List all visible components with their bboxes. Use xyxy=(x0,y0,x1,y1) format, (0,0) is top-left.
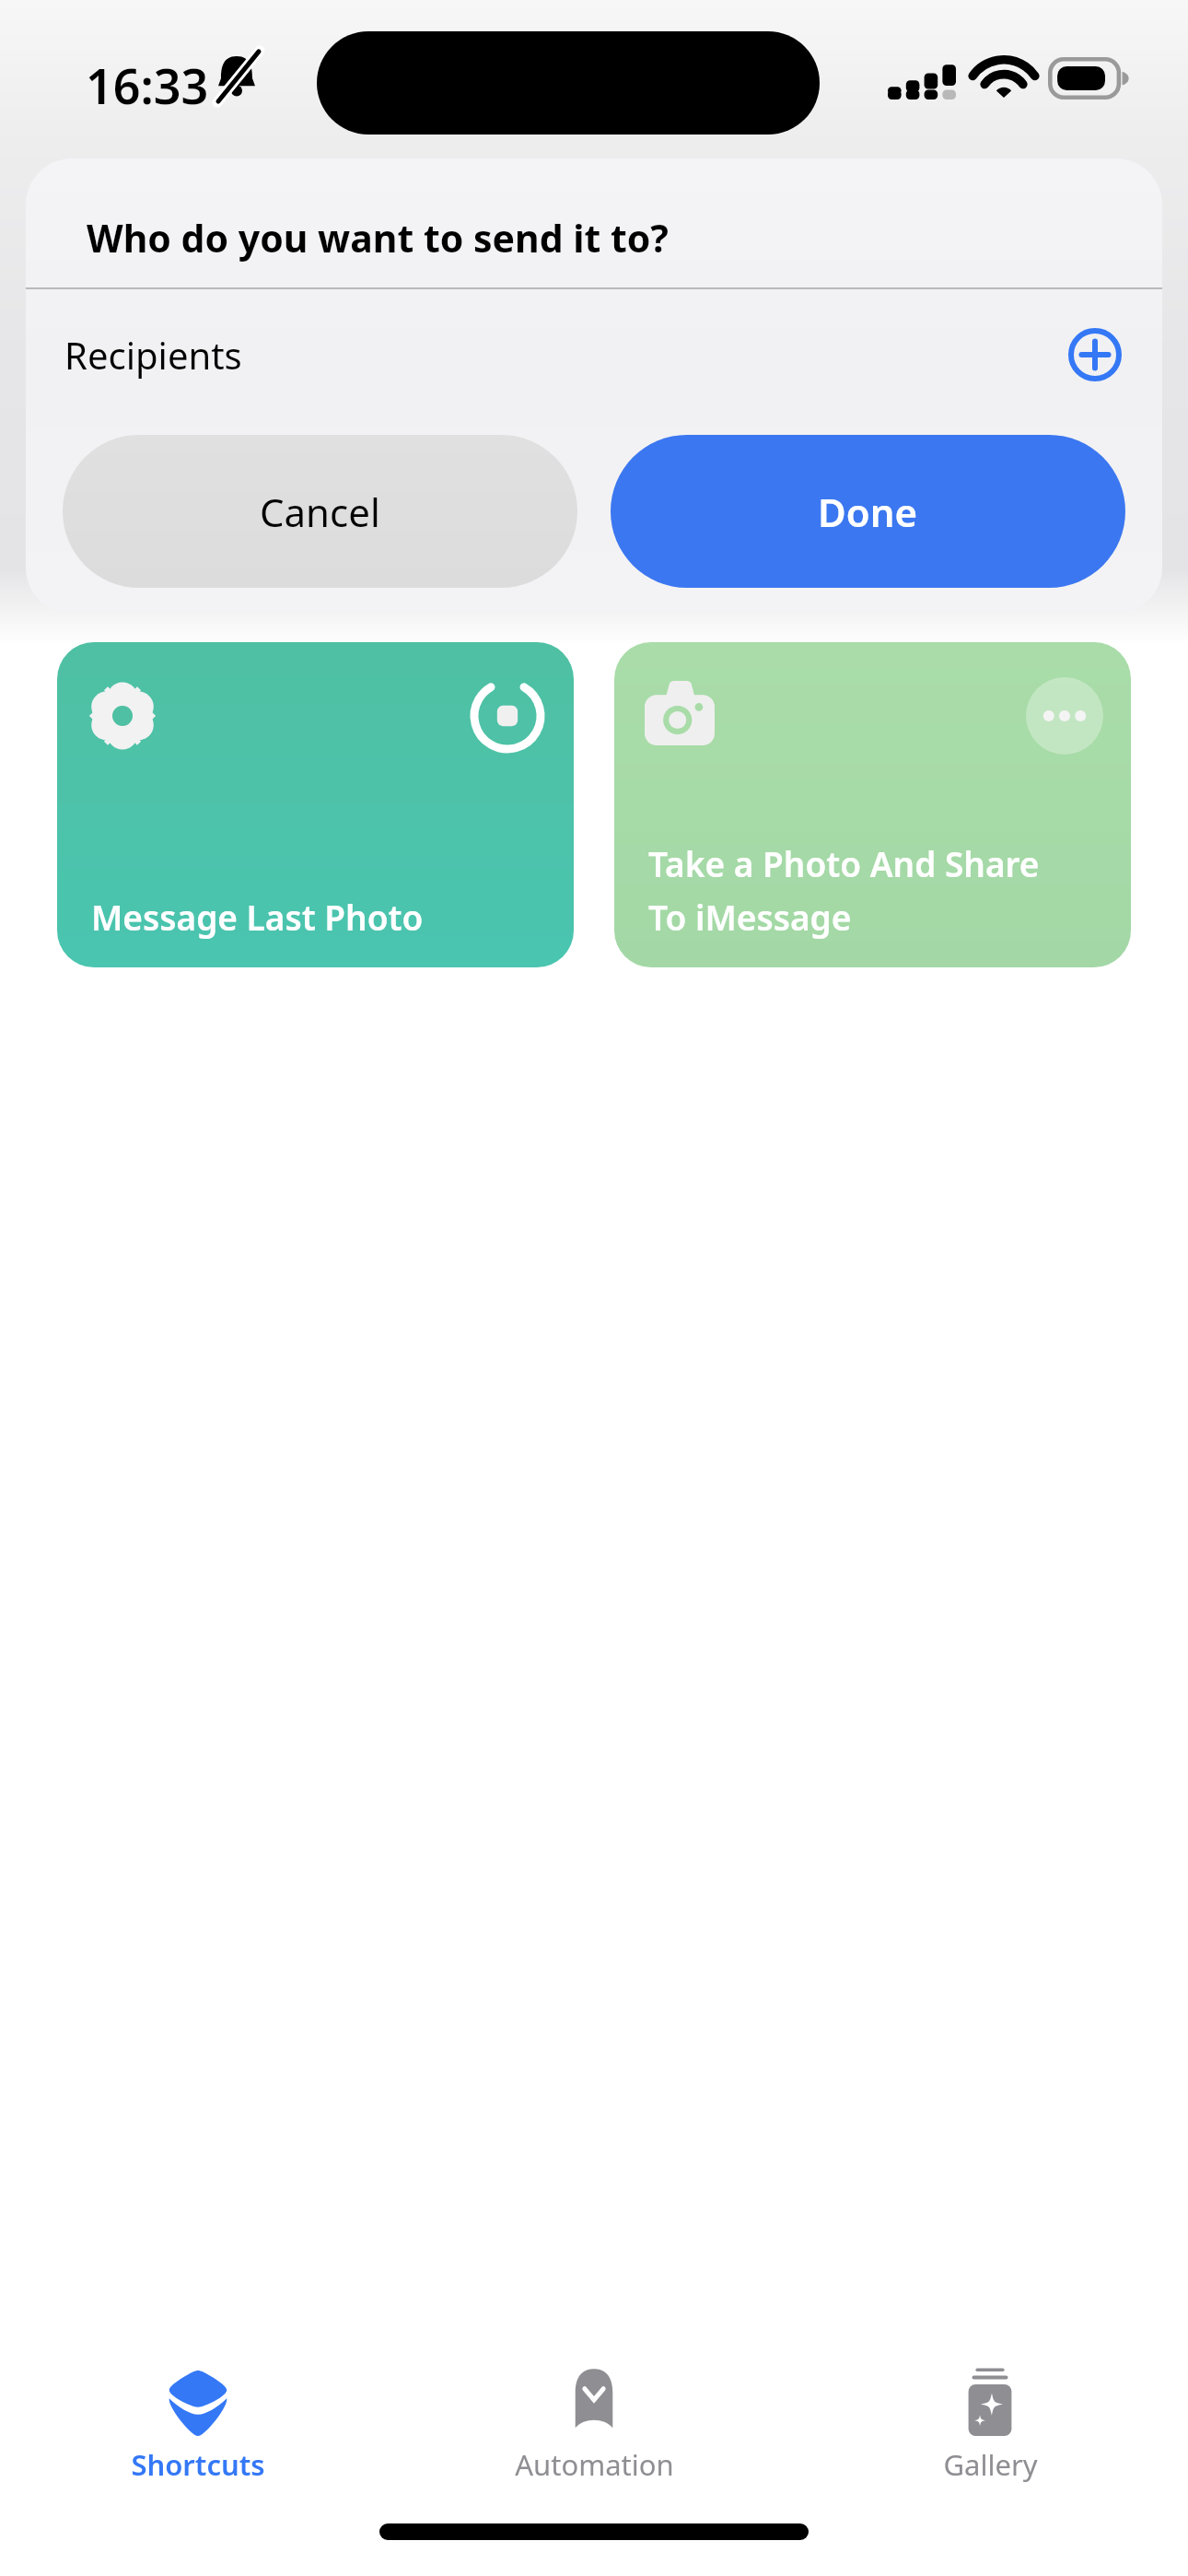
staticText: Automation xyxy=(515,2445,674,2484)
staticText: Shortcuts xyxy=(131,2445,265,2484)
button[interactable]: Automation xyxy=(396,2346,792,2507)
button[interactable]: More options xyxy=(1026,677,1103,755)
button[interactable]: Cancel xyxy=(63,435,577,588)
staticText: Message Last Photo xyxy=(91,894,424,940)
button[interactable]: Done xyxy=(611,435,1125,588)
staticText: Done xyxy=(818,486,918,538)
staticText: Cancel xyxy=(260,486,380,538)
button[interactable]: Shortcuts xyxy=(0,2346,396,2507)
button[interactable]: Add recipient xyxy=(1061,321,1129,389)
staticText: Take a Photo And Share To iMessage xyxy=(648,840,1040,940)
staticText: Gallery xyxy=(943,2445,1038,2484)
staticText: 16:33 xyxy=(86,53,209,118)
button[interactable]: More options xyxy=(614,642,1131,967)
button[interactable]: Stop running xyxy=(469,677,546,755)
staticText: Recipients xyxy=(64,330,242,380)
button[interactable]: Stop running xyxy=(57,642,574,967)
button[interactable]: Recipients xyxy=(26,289,1162,420)
button[interactable]: Gallery xyxy=(792,2346,1188,2507)
staticText: Who do you want to send it to? xyxy=(87,212,669,263)
